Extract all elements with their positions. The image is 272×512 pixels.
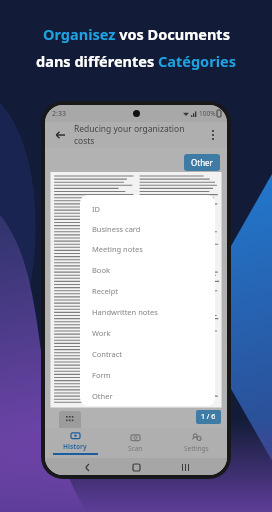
button[interactable]: History xyxy=(45,428,105,458)
button[interactable]: ID xyxy=(92,199,215,219)
staticText: Form xyxy=(92,370,111,380)
button[interactable]: Contract xyxy=(92,343,215,364)
button[interactable]: Grid view xyxy=(59,411,81,428)
staticText: 2:33 xyxy=(52,109,66,119)
staticText: Meeting notes xyxy=(92,244,143,254)
button[interactable]: Home xyxy=(129,460,143,474)
staticText: History xyxy=(63,442,87,451)
staticText: Business card xyxy=(92,224,141,234)
staticText: Scan xyxy=(128,444,143,453)
staticText: ID xyxy=(92,204,101,214)
button[interactable]: Receipt xyxy=(92,280,215,301)
button[interactable]: Other xyxy=(184,154,220,171)
staticText: Settings xyxy=(184,444,209,453)
staticText: Other xyxy=(92,391,113,401)
staticText: dans différentes Catégories xyxy=(36,51,236,71)
button[interactable]: Back xyxy=(51,126,69,144)
button[interactable]: 1 / 6 xyxy=(196,410,221,424)
staticText: Reducing your organization costs xyxy=(74,123,205,147)
staticText: 1 / 6 xyxy=(201,412,216,422)
button[interactable]: Work xyxy=(92,322,215,343)
staticText: Receipt xyxy=(92,286,118,296)
button[interactable]: Business card xyxy=(92,219,215,239)
button[interactable]: Recents xyxy=(178,460,192,474)
staticText: Book xyxy=(92,265,110,275)
button[interactable]: Meeting notes xyxy=(92,239,215,259)
button[interactable]: Other xyxy=(92,385,215,406)
button[interactable]: Handwritten notes xyxy=(92,301,215,322)
staticText: Organisez vos Documents xyxy=(43,24,230,44)
button[interactable]: Back xyxy=(80,460,94,474)
staticText: Work xyxy=(92,328,111,338)
button[interactable]: More options xyxy=(205,127,221,143)
staticText: Handwritten notes xyxy=(92,307,158,317)
button[interactable]: Book xyxy=(92,259,215,280)
button[interactable]: Form xyxy=(92,364,215,385)
staticText: Other xyxy=(191,157,213,168)
button[interactable]: Scan xyxy=(105,428,166,458)
staticText: 100% xyxy=(199,109,216,118)
staticText: Contract xyxy=(92,349,123,359)
button[interactable]: Settings xyxy=(166,428,227,458)
